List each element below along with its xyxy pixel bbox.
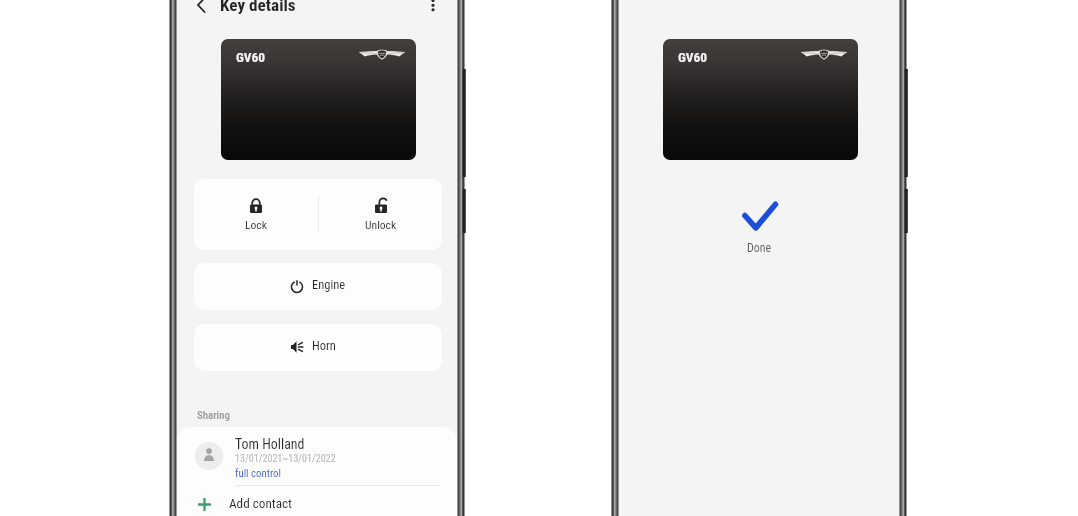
staticText: GV60 bbox=[236, 50, 266, 66]
button[interactable]: Horn bbox=[194, 324, 442, 371]
button[interactable]: Unlock bbox=[319, 179, 442, 250]
staticText: Done bbox=[747, 241, 772, 255]
button[interactable]: Tom Holland bbox=[235, 436, 305, 452]
button[interactable]: More options bbox=[421, 0, 445, 12]
staticText: Lock bbox=[245, 218, 267, 232]
button[interactable]: Lock bbox=[194, 179, 318, 250]
staticText: GV60 bbox=[678, 50, 708, 66]
staticText: Horn bbox=[312, 338, 336, 353]
staticText: Engine bbox=[312, 277, 346, 292]
staticText: Key details bbox=[220, 0, 296, 15]
button[interactable]: Key details bbox=[220, 0, 296, 15]
staticText: full control bbox=[235, 467, 281, 480]
button[interactable]: Add contact bbox=[177, 486, 457, 516]
staticText: Add contact bbox=[229, 496, 293, 511]
button[interactable]: Engine bbox=[194, 263, 442, 310]
staticText: 13/01/2021~13/01/2022 bbox=[235, 453, 336, 465]
staticText: Sharing bbox=[197, 409, 230, 422]
staticText: Unlock bbox=[365, 218, 397, 232]
button[interactable]: GV60 bbox=[663, 39, 858, 160]
button[interactable]: GV60 bbox=[221, 39, 416, 160]
other: Done bbox=[737, 198, 787, 234]
button[interactable]: Back bbox=[186, 0, 210, 17]
